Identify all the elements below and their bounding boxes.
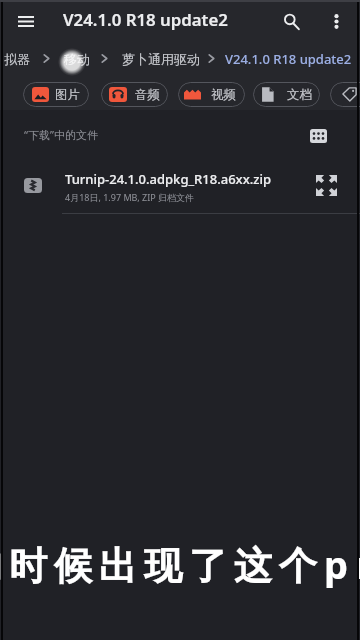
staticText: 文档 (287, 87, 312, 103)
button[interactable]: V24.1.0 R18 update2 (219, 46, 358, 72)
staticText: 图片 (55, 87, 80, 103)
staticText: V24.1.0 R18 update2 (63, 8, 228, 31)
staticText: 4月18日, 1.97 MB, ZIP 归档文件 (65, 191, 195, 203)
button[interactable]: 图片 (23, 82, 89, 107)
button[interactable]: Menu (10, 5, 42, 37)
button[interactable]: Expand (311, 170, 341, 200)
staticText: V24.1.0 R18 update2 (225, 50, 352, 68)
button[interactable]: Turnip-24.1.0.adpkg_R18.a6xx.zip (0, 161, 360, 213)
button[interactable]: 拟器 (0, 46, 36, 72)
button[interactable]: 萝卜通用驱动 (116, 46, 206, 72)
button[interactable]: 移动 (58, 46, 96, 72)
button[interactable]: 视频 (178, 82, 245, 107)
button[interactable]: 文档 (253, 82, 320, 107)
staticText: 的时候出现了这个pro (0, 538, 360, 590)
staticText: 移动 (64, 51, 90, 67)
staticText: 萝卜通用驱动 (122, 51, 200, 67)
button[interactable]: 音频 (101, 82, 168, 107)
staticText: 拟器 (4, 51, 30, 67)
staticText: 视频 (211, 87, 236, 103)
staticText: “下载”中的文件 (24, 127, 98, 142)
staticText: Turnip-24.1.0.adpkg_R18.a6xx.zip (65, 170, 271, 188)
button[interactable]: Search (275, 5, 307, 37)
button[interactable]: More options (320, 5, 352, 37)
button[interactable]: Grid view (304, 122, 332, 150)
button[interactable] (330, 82, 360, 107)
staticText: 音频 (135, 87, 160, 103)
